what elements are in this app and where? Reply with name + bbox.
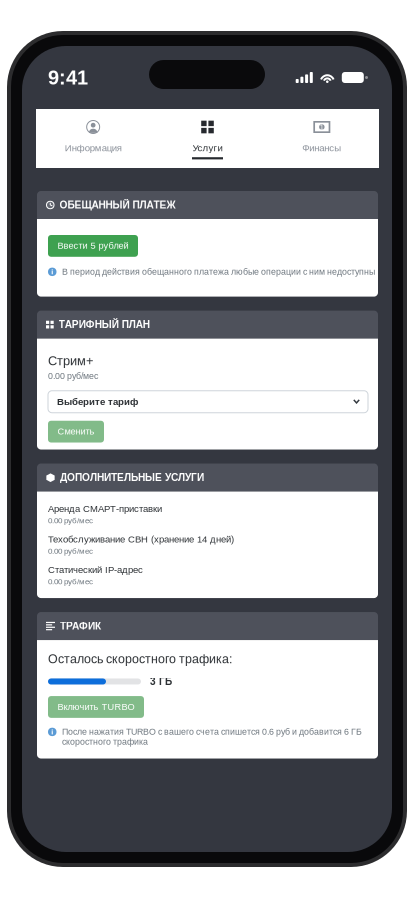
staticText: Аренда СМАРТ-приставки (48, 503, 162, 514)
staticText: Выберите тариф (57, 396, 138, 407)
staticText: ДОПОЛНИТЕЛЬНЫЕ УСЛУГИ (60, 472, 204, 483)
staticText: 0.00 руб/мес (48, 516, 93, 525)
staticText: 0.00 руб/мес (48, 547, 93, 555)
staticText: 3 ГБ (150, 676, 172, 687)
button[interactable]: Ввести 5 рублей (48, 235, 138, 257)
staticText: Информация (65, 142, 122, 153)
staticText: Стрим+ (48, 354, 93, 368)
button[interactable]: 1 (265, 109, 379, 168)
button[interactable]: Информация (36, 109, 150, 168)
button[interactable]: Включить TURBO (48, 696, 144, 718)
staticText: Осталось скоростного трафика: (48, 652, 232, 666)
staticText: 9:41 (48, 66, 88, 89)
staticText: Сменить (57, 426, 94, 436)
staticText: 1 (320, 123, 324, 131)
staticText: Техобслуживание СВН (хранение 14 дней) (48, 534, 234, 545)
staticText: ТАРИФНЫЙ ПЛАН (59, 319, 150, 330)
staticText: 0.00 руб/мес (48, 371, 98, 381)
button[interactable]: Выберите тариф (48, 391, 368, 413)
staticText: В период действия обещанного платежа люб… (62, 267, 375, 277)
staticText: Включить TURBO (57, 702, 134, 712)
staticText: Ввести 5 рублей (57, 240, 128, 251)
staticText: ОБЕЩАННЫЙ ПЛАТЕЖ (59, 199, 175, 211)
staticText: Статический IP-адрес (48, 564, 143, 575)
staticText: 0.00 руб/мес (48, 577, 93, 586)
staticText: ТРАФИК (60, 620, 101, 632)
staticText: После нажатия TURBO с вашего счета спише… (62, 727, 362, 747)
staticText: Услуги (192, 142, 222, 153)
staticText: Финансы (302, 142, 341, 153)
button[interactable]: Услуги (150, 109, 265, 168)
button[interactable]: Сменить (48, 421, 104, 442)
